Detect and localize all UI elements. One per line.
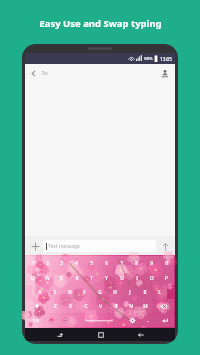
staticText: Y (105, 275, 108, 282)
button[interactable]: Back (25, 65, 41, 81)
button[interactable]: J (122, 285, 137, 299)
button[interactable]: 0 (159, 256, 174, 271)
staticText: C (84, 303, 88, 310)
staticText: D (68, 289, 72, 296)
staticText: P (165, 275, 168, 282)
staticText: W (45, 275, 50, 282)
button[interactable]: Key (26, 313, 44, 327)
button[interactable]: O (144, 271, 159, 285)
staticText: 4 (75, 260, 78, 267)
button[interactable]: S (47, 285, 62, 299)
staticText: 123 (32, 318, 39, 323)
staticText: To (41, 69, 48, 76)
button[interactable]: R (69, 271, 84, 285)
staticText: 9 (150, 260, 153, 267)
staticText: V (99, 303, 102, 310)
staticText: 0 (165, 260, 168, 267)
button[interactable]: A (32, 285, 47, 299)
button[interactable]: 8 (129, 256, 144, 271)
button[interactable]: 1 (26, 256, 40, 271)
staticText: B (114, 303, 118, 310)
button[interactable]: Key (26, 299, 48, 313)
button[interactable]: X (63, 299, 78, 313)
staticText: A (38, 289, 42, 296)
button[interactable]: Home (94, 328, 107, 341)
staticText: M (143, 303, 148, 310)
button[interactable]: Add contact (157, 65, 173, 81)
staticText: L (158, 289, 161, 296)
staticText: Easy Use and Swap typing (39, 17, 162, 30)
button[interactable]: 6 (99, 256, 114, 271)
button[interactable]: K (137, 285, 152, 299)
staticText: Text message (48, 243, 80, 250)
staticText: . (147, 317, 149, 324)
button[interactable]: E (54, 271, 69, 285)
button[interactable]: Q (26, 271, 40, 285)
button[interactable]: Key (140, 313, 155, 327)
button[interactable]: Key (125, 313, 140, 327)
staticText: 88% (144, 56, 153, 62)
button[interactable]: G (92, 285, 107, 299)
button[interactable]: Key (153, 299, 174, 313)
staticText: R (75, 275, 79, 282)
staticText: H (113, 289, 117, 296)
button[interactable]: W (40, 271, 54, 285)
staticText: 5 (90, 260, 93, 267)
staticText: F (83, 289, 86, 296)
staticText: G (98, 289, 102, 296)
staticText: 6 (105, 260, 108, 267)
button[interactable]: Send (159, 240, 171, 252)
staticText: Q (31, 275, 35, 282)
staticText: U (120, 275, 124, 282)
staticText: S (53, 289, 56, 296)
staticText: E (60, 275, 63, 282)
button[interactable]: T (84, 271, 99, 285)
button[interactable]: 3 (54, 256, 69, 271)
button[interactable]: Key (58, 313, 73, 327)
button[interactable]: Key (44, 313, 58, 327)
staticText: 13:05 (160, 56, 172, 62)
staticText: X (69, 303, 72, 310)
staticText: I (136, 275, 138, 282)
button[interactable]: Key (155, 313, 174, 327)
button[interactable]: Recents (53, 328, 66, 341)
button[interactable]: C (78, 299, 93, 313)
staticText: O (150, 275, 154, 282)
button[interactable]: Y (99, 271, 114, 285)
button[interactable]: B (108, 299, 123, 313)
button[interactable]: H (107, 285, 122, 299)
button[interactable]: 2 (40, 256, 54, 271)
staticText: 2 (46, 260, 49, 267)
staticText: 3 (60, 260, 63, 267)
staticText: K (143, 289, 147, 296)
button[interactable]: 9 (144, 256, 159, 271)
button[interactable]: Back (134, 328, 147, 341)
button[interactable]: Key (73, 313, 125, 327)
button[interactable]: Z (48, 299, 63, 313)
button[interactable]: 5 (84, 256, 99, 271)
button[interactable]: P (159, 271, 174, 285)
button[interactable]: V (93, 299, 108, 313)
staticText: 8 (135, 260, 138, 267)
button[interactable]: M (138, 299, 153, 313)
staticText: N (129, 303, 133, 310)
staticText: Z (54, 303, 57, 310)
button[interactable]: D (62, 285, 77, 299)
staticText: J (129, 289, 131, 296)
button[interactable]: Text message (43, 240, 156, 252)
button[interactable]: 4 (69, 256, 84, 271)
staticText: T (90, 275, 93, 282)
button[interactable]: I (129, 271, 144, 285)
button[interactable]: 7 (114, 256, 129, 271)
staticText: 7 (120, 260, 123, 267)
button[interactable]: F (77, 285, 92, 299)
staticText: 1 (32, 260, 35, 267)
button[interactable]: L (152, 285, 167, 299)
button[interactable]: U (114, 271, 129, 285)
button[interactable]: Attach (29, 240, 41, 252)
button[interactable]: N (123, 299, 138, 313)
